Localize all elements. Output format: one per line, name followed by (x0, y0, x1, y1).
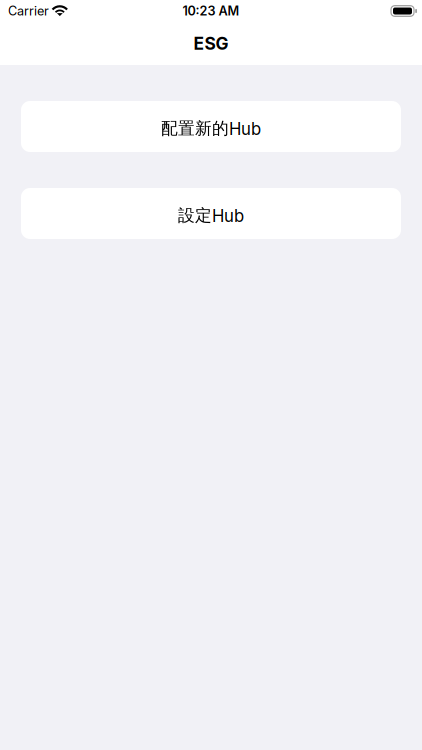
staticText: 配置新的Hub (161, 118, 261, 139)
staticText: 設定Hub (178, 205, 244, 226)
staticText: Carrier (8, 3, 49, 19)
button[interactable]: 配置新的Hub (21, 101, 401, 152)
button[interactable]: 設定Hub (21, 188, 401, 239)
staticText: 10:23 AM (182, 3, 239, 19)
staticText: ESG (193, 33, 228, 54)
